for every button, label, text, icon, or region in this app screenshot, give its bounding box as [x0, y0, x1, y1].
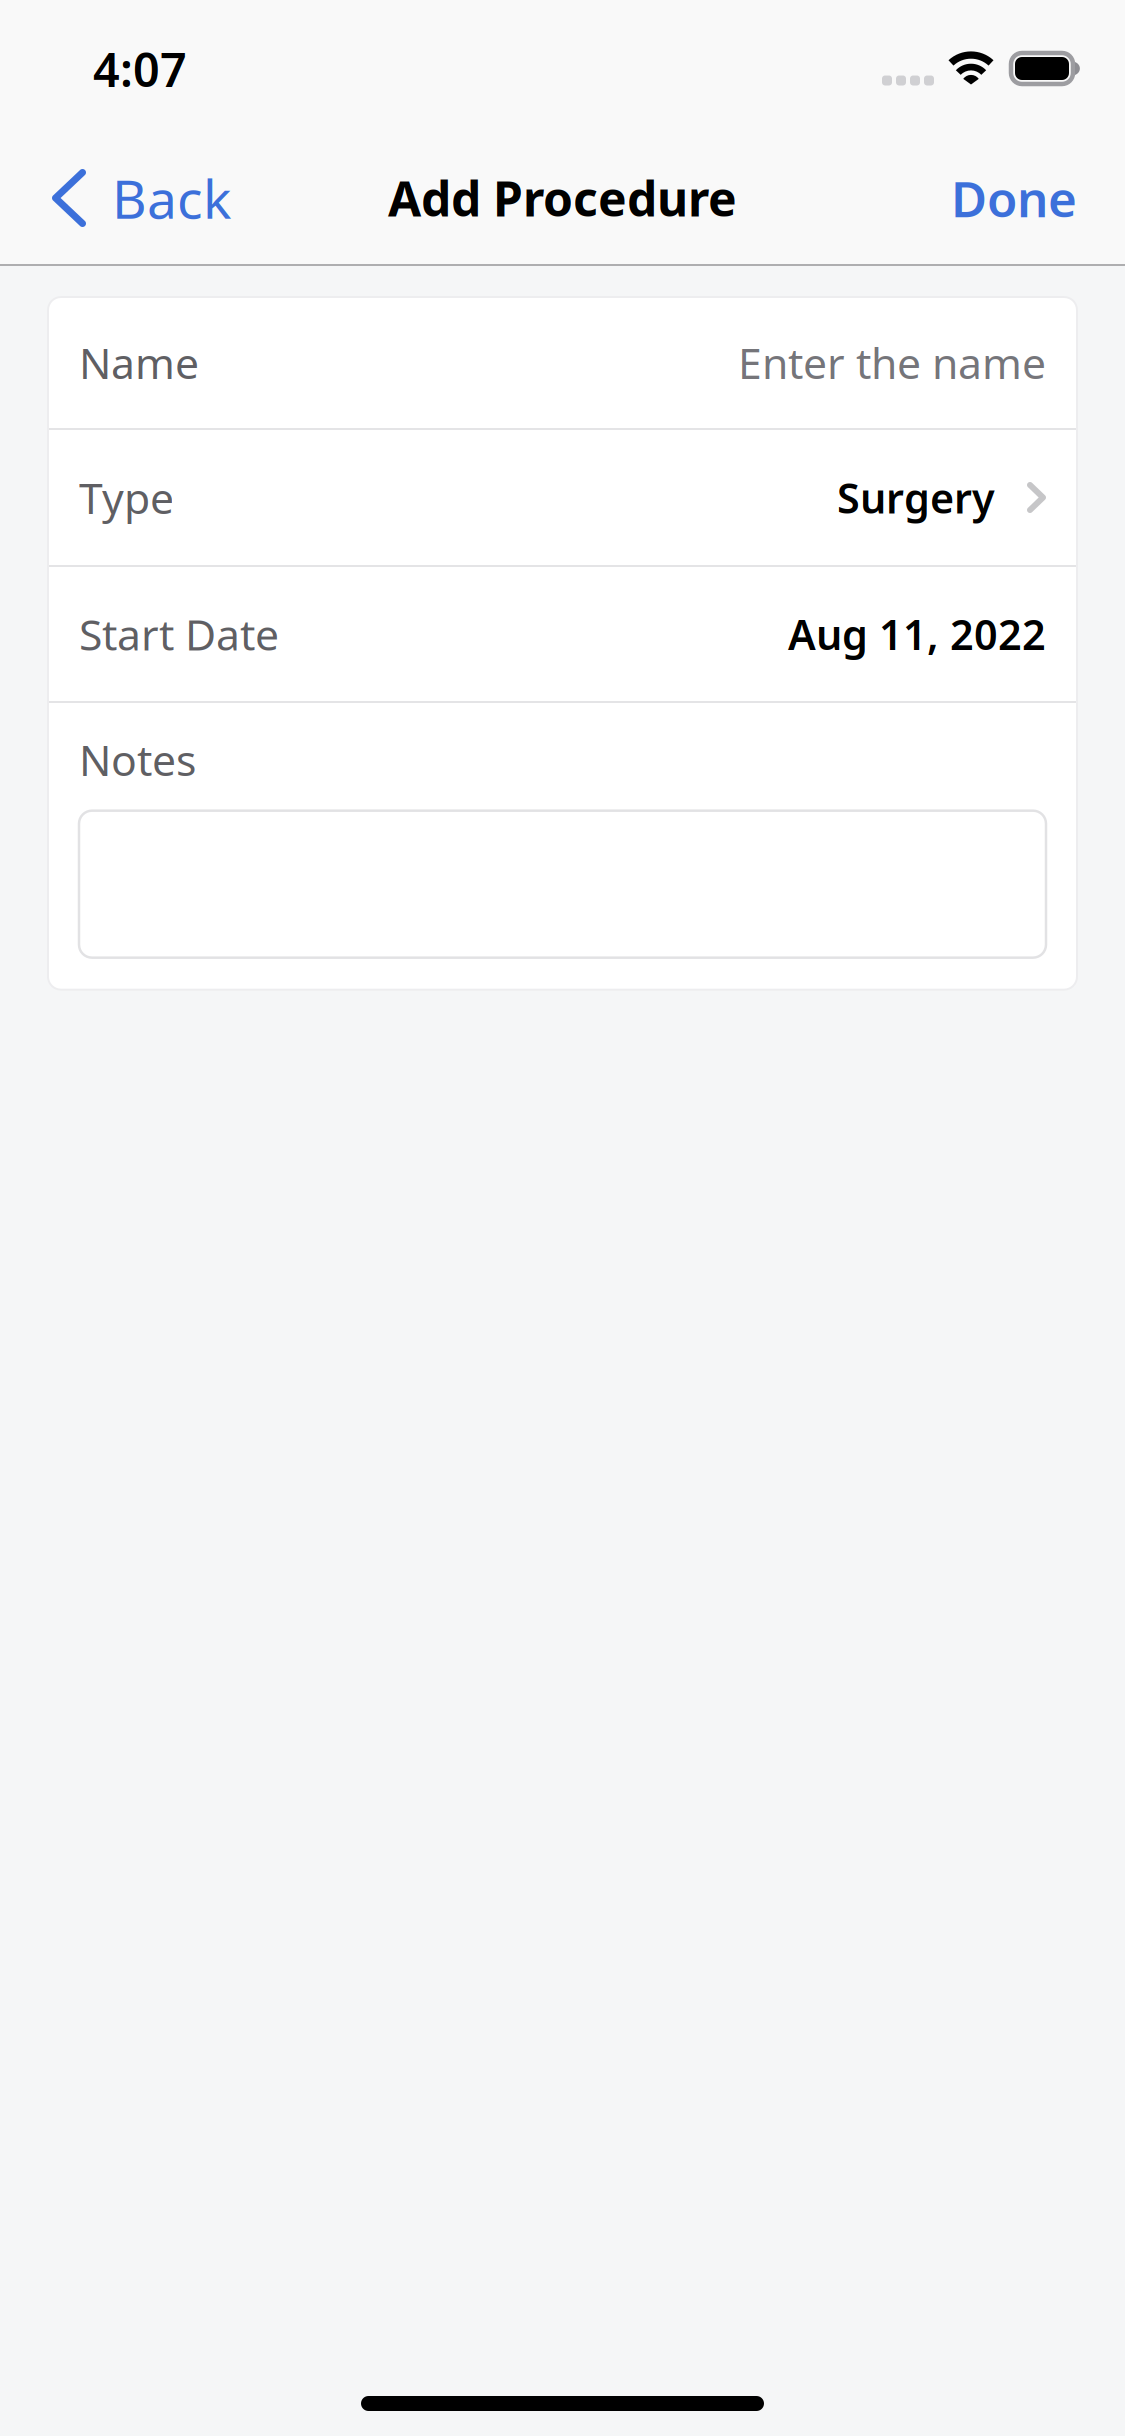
- button[interactable]: Name: [48, 297, 1077, 428]
- staticText: Enter the name: [738, 334, 1046, 391]
- button[interactable]: Type: [48, 430, 1077, 565]
- staticText: Back: [112, 163, 231, 233]
- button[interactable]: Back: [0, 132, 261, 264]
- staticText: Name: [79, 334, 199, 391]
- staticText: Aug 11, 2022: [788, 607, 1046, 661]
- staticText: 4:07: [93, 38, 187, 100]
- staticText: Notes: [79, 731, 196, 788]
- staticText: Surgery: [837, 470, 995, 525]
- staticText: Type: [79, 469, 174, 526]
- staticText: Add Procedure: [388, 166, 737, 230]
- staticText: Done: [951, 165, 1077, 231]
- button[interactable]: Start Date: [48, 567, 1077, 701]
- staticText: Start Date: [79, 606, 279, 662]
- button[interactable]: Notes: [79, 811, 1046, 958]
- button[interactable]: Done: [921, 132, 1125, 264]
